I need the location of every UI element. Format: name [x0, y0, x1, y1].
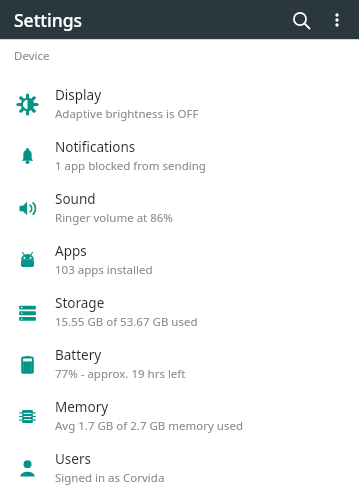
staticText: Memory	[55, 398, 109, 416]
staticText: Sound	[55, 190, 96, 208]
button[interactable]: Search	[283, 2, 319, 38]
button[interactable]: Battery	[0, 338, 359, 390]
button[interactable]: Sound	[0, 182, 359, 234]
staticText: Display	[55, 86, 102, 104]
staticText: Device	[14, 48, 50, 64]
staticText: Ringer volume at 86%	[55, 210, 173, 226]
staticText: Signed in as Corvida	[55, 470, 165, 486]
staticText: 103 apps installed	[55, 262, 153, 278]
staticText: Settings	[14, 8, 83, 32]
staticText: Adaptive brightness is OFF	[55, 106, 199, 122]
staticText: Apps	[55, 242, 87, 260]
staticText: Storage	[55, 294, 105, 312]
button[interactable]: Apps	[0, 234, 359, 286]
staticText: Avg 1.7 GB of 2.7 GB memory used	[55, 418, 244, 434]
staticText: Users	[55, 450, 91, 468]
button[interactable]: Display	[0, 78, 359, 130]
button[interactable]: More options	[319, 2, 355, 38]
button[interactable]: Memory	[0, 390, 359, 442]
staticText: Notifications	[55, 138, 136, 156]
button[interactable]: Storage	[0, 286, 359, 338]
staticText: Battery	[55, 346, 102, 364]
staticText: 15.55 GB of 53.67 GB used	[55, 314, 198, 330]
button[interactable]: Users	[0, 442, 359, 494]
staticText: 77% - approx. 19 hrs left	[55, 366, 186, 382]
button[interactable]: Notifications	[0, 130, 359, 182]
staticText: 1 app blocked from sending	[55, 158, 206, 174]
